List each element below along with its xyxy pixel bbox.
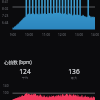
staticText: 10:00 xyxy=(23,33,35,37)
staticText: 100 xyxy=(3,91,9,95)
staticText: 心拍数 (bpm) xyxy=(4,59,32,65)
staticText: 9:00 xyxy=(7,33,19,37)
staticText: 13:00 xyxy=(73,33,85,37)
staticText: 7:23 xyxy=(2,14,9,18)
staticText: 14:00 xyxy=(89,33,100,37)
staticText: 140 xyxy=(3,84,9,88)
staticText: 11:00 xyxy=(40,33,52,37)
staticText: 平均 xyxy=(17,76,33,80)
staticText: 136 xyxy=(66,67,82,76)
staticText: 最大 xyxy=(66,76,82,80)
staticText: 8:41 xyxy=(2,0,9,4)
staticText: 124 xyxy=(17,67,33,76)
staticText: 6:44 xyxy=(2,21,9,25)
staticText: 8:02 xyxy=(2,7,9,11)
staticText: 12:00 xyxy=(56,33,68,37)
